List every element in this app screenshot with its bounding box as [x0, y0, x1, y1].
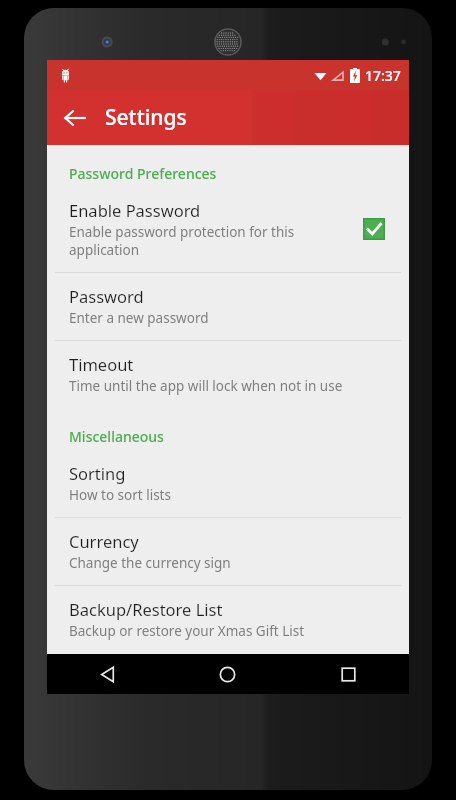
button[interactable]: Backup/Restore List: [47, 586, 409, 653]
button[interactable]: Back: [47, 654, 167, 694]
staticText: Backup or restore your Xmas Gift List: [69, 622, 305, 640]
staticText: Backup/Restore List: [69, 598, 223, 620]
staticText: Time until the app will lock when not in…: [69, 377, 343, 395]
button[interactable]: Currency: [47, 518, 409, 585]
staticText: Enable password protection for this appl…: [69, 223, 295, 259]
button[interactable]: Recent apps: [288, 654, 409, 694]
staticText: Currency: [69, 530, 139, 552]
staticText: Settings: [105, 103, 187, 132]
staticText: 17:37: [365, 66, 401, 85]
staticText: How to sort lists: [69, 486, 171, 504]
staticText: Sorting: [69, 462, 126, 484]
button[interactable]: Timeout: [47, 341, 409, 408]
button[interactable]: Enable Password toggle: [357, 212, 391, 246]
staticText: Enable Password: [69, 199, 201, 221]
staticText: Change the currency sign: [69, 554, 231, 572]
staticText: Miscellaneous: [69, 427, 164, 446]
staticText: Enter a new password: [69, 309, 209, 327]
button[interactable]: Home: [167, 654, 288, 694]
button[interactable]: Password: [47, 273, 409, 340]
button[interactable]: Back: [53, 96, 97, 140]
staticText: Password: [69, 285, 144, 307]
staticText: Timeout: [69, 353, 134, 375]
button[interactable]: Sorting: [47, 450, 409, 517]
staticText: Password Preferences: [69, 164, 217, 183]
button[interactable]: Enable Password: [47, 187, 409, 272]
